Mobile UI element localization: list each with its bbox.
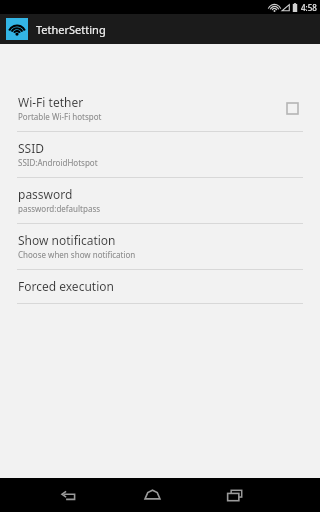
button[interactable]: password (0, 178, 320, 223)
button[interactable]: Recent apps (213, 478, 257, 512)
staticText: password (18, 186, 73, 202)
staticText: SSID:AndroidHotspot (18, 157, 98, 168)
button[interactable]: Show notification (0, 224, 320, 269)
staticText: TetherSetting (36, 22, 106, 37)
staticText: 4:58 (301, 2, 317, 13)
button[interactable]: SSID (0, 132, 320, 177)
staticText: Forced execution (18, 278, 114, 294)
staticText: Wi-Fi tether (18, 94, 84, 110)
button[interactable]: Home (130, 478, 174, 512)
staticText: Show notification (18, 232, 116, 248)
button[interactable]: Wi-Fi tether toggle (280, 96, 304, 120)
staticText: Portable Wi-Fi hotspot (18, 111, 102, 122)
staticText: Choose when show notification (18, 249, 136, 260)
button[interactable]: Back (47, 478, 91, 512)
button[interactable]: Wi-Fi tether (0, 86, 320, 131)
staticText: SSID (18, 140, 45, 156)
button[interactable]: Forced execution (0, 270, 320, 303)
staticText: password:defaultpass (18, 203, 101, 214)
